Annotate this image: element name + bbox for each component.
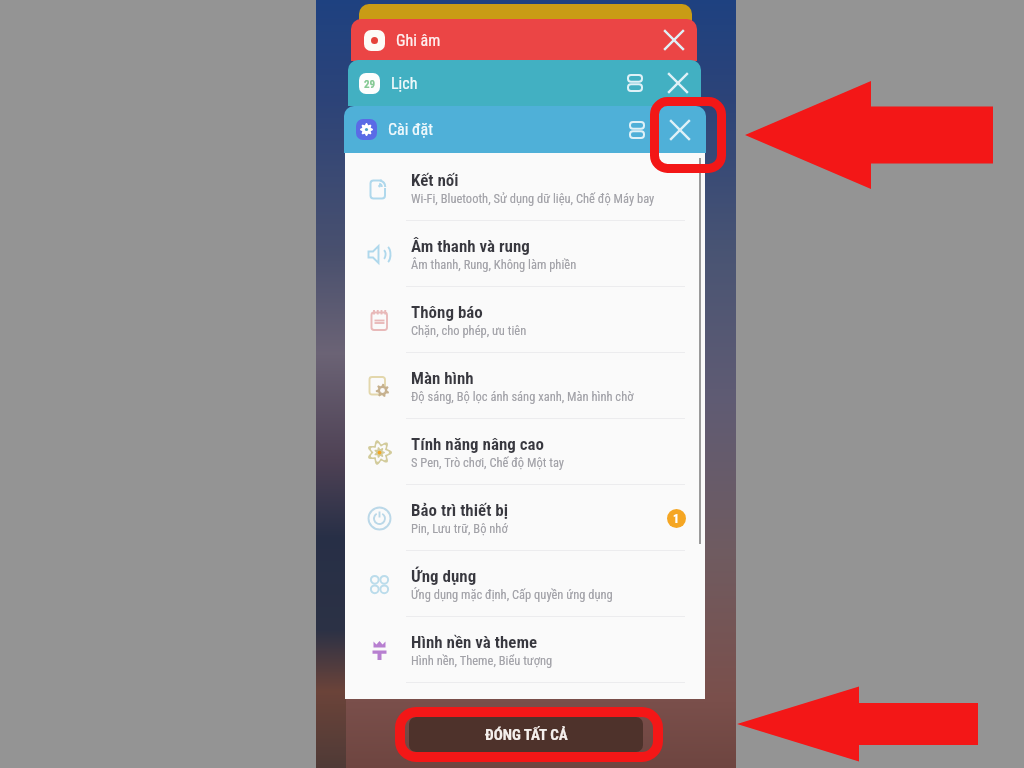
button[interactable]: Màn hình bbox=[345, 353, 705, 419]
button[interactable]: Âm thanh và rung bbox=[345, 221, 705, 287]
staticText: Ứng dụng mặc định, Cấp quyền ứng dụng bbox=[411, 587, 613, 602]
staticText: Wi-Fi, Bluetooth, Sử dụng dữ liệu, Chế đ… bbox=[411, 191, 655, 206]
button[interactable]: Close Lịch bbox=[661, 66, 695, 100]
staticText: Bảo trì thiết bị bbox=[411, 500, 508, 520]
button[interactable]: Ghi âm bbox=[351, 19, 697, 61]
staticText: Pin, Lưu trữ, Bộ nhớ bbox=[411, 521, 508, 536]
button[interactable]: Ứng dụng bbox=[345, 551, 705, 617]
button[interactable]: Close Ghi âm bbox=[657, 23, 691, 57]
staticText: Hình nền, Theme, Biểu tượng bbox=[411, 653, 553, 668]
button[interactable]: Close Cài đặt bbox=[663, 113, 697, 147]
staticText: Hình nền và theme bbox=[411, 632, 538, 652]
button[interactable]: Split screen view bbox=[618, 66, 652, 100]
button[interactable]: Kết nối bbox=[345, 155, 705, 221]
staticText: Âm thanh, Rung, Không làm phiền bbox=[411, 257, 577, 272]
button[interactable]: Cài đặt bbox=[344, 106, 706, 153]
button[interactable]: Tính năng nâng cao bbox=[345, 419, 705, 485]
button[interactable]: Hình nền và theme bbox=[345, 617, 705, 683]
staticText: Ứng dụng bbox=[411, 566, 477, 586]
staticText: Lịch bbox=[391, 74, 418, 93]
staticText: Màn hình bbox=[411, 368, 474, 388]
staticText: Kết nối bbox=[411, 170, 459, 190]
staticText: Ghi âm bbox=[396, 31, 441, 50]
button[interactable]: Split screen view bbox=[620, 113, 654, 147]
staticText: Cài đặt bbox=[388, 120, 433, 139]
staticText: Âm thanh và rung bbox=[411, 236, 530, 256]
button[interactable]: Thông báo bbox=[345, 287, 705, 353]
staticText: 29 bbox=[364, 78, 376, 91]
staticText: Thông báo bbox=[411, 302, 483, 322]
staticText: 1 bbox=[673, 512, 680, 526]
staticText: Độ sáng, Bộ lọc ánh sáng xanh, Màn hình … bbox=[411, 389, 634, 404]
staticText: Tính năng nâng cao bbox=[411, 434, 545, 454]
button[interactable]: 29 bbox=[348, 60, 701, 106]
staticText: Chặn, cho phép, ưu tiên bbox=[411, 323, 527, 338]
button[interactable]: Bảo trì thiết bị bbox=[345, 485, 705, 551]
button[interactable]: ĐÓNG TẤT CẢ bbox=[409, 717, 643, 752]
staticText: S Pen, Trò chơi, Chế độ Một tay bbox=[411, 455, 565, 470]
staticText: ĐÓNG TẤT CẢ bbox=[485, 726, 568, 744]
